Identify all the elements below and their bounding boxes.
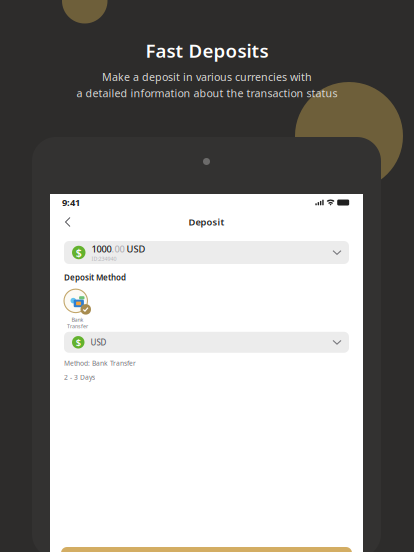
staticText: Bank: [71, 316, 83, 323]
staticText: Fast Deposits: [145, 38, 268, 63]
staticText: Deposit Method: [64, 272, 126, 283]
staticText: 9:41: [62, 196, 80, 209]
staticText: Transfer: [67, 323, 88, 330]
staticText: USD: [90, 337, 106, 348]
staticText: 2 - 3 Days: [64, 373, 95, 381]
button[interactable]: $: [64, 332, 349, 353]
staticText: Method: Bank Transfer: [64, 359, 136, 368]
staticText: .00: [111, 243, 126, 255]
staticText: Make a deposit in various currencies wit…: [102, 70, 312, 84]
staticText: 1000: [91, 243, 111, 255]
staticText: $: [76, 336, 81, 348]
button[interactable]: $: [64, 241, 349, 264]
button[interactable]: Bank: [64, 289, 91, 330]
staticText: Deposit: [188, 216, 224, 228]
staticText: a detailed information about the transac…: [76, 86, 337, 100]
staticText: USD: [126, 243, 145, 255]
staticText: $: [76, 245, 82, 260]
staticText: ID:234940: [91, 255, 116, 262]
button[interactable]: Back: [58, 213, 78, 231]
button[interactable]: Deposit: [61, 547, 352, 552]
